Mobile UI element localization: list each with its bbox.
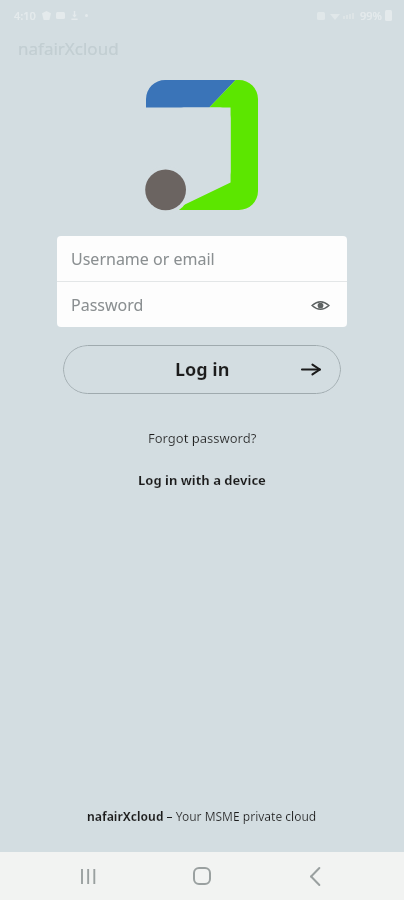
button[interactable]: Password <box>57 282 347 327</box>
staticText: Forgot password? <box>148 429 257 447</box>
button[interactable]: Username or email <box>57 236 347 281</box>
button[interactable]: Forgot password? <box>138 426 267 450</box>
staticText: 99% <box>360 8 382 23</box>
staticText: nafairXcloud <box>18 37 119 60</box>
button[interactable]: Home <box>178 852 226 900</box>
button[interactable]: Back <box>291 852 339 900</box>
staticText: Log in <box>175 357 230 382</box>
button[interactable]: Log in with a device <box>128 468 276 492</box>
staticText: nafairXcloud – Your MSME private cloud <box>87 808 317 824</box>
staticText: Username or email <box>71 248 215 270</box>
staticText: 4:10 <box>14 8 36 23</box>
staticText: Password <box>71 294 144 316</box>
staticText: Log in with a device <box>138 471 266 489</box>
button[interactable]: Recent apps <box>65 852 113 900</box>
button[interactable]: Log in <box>63 345 341 394</box>
button[interactable]: Show password <box>307 292 333 318</box>
